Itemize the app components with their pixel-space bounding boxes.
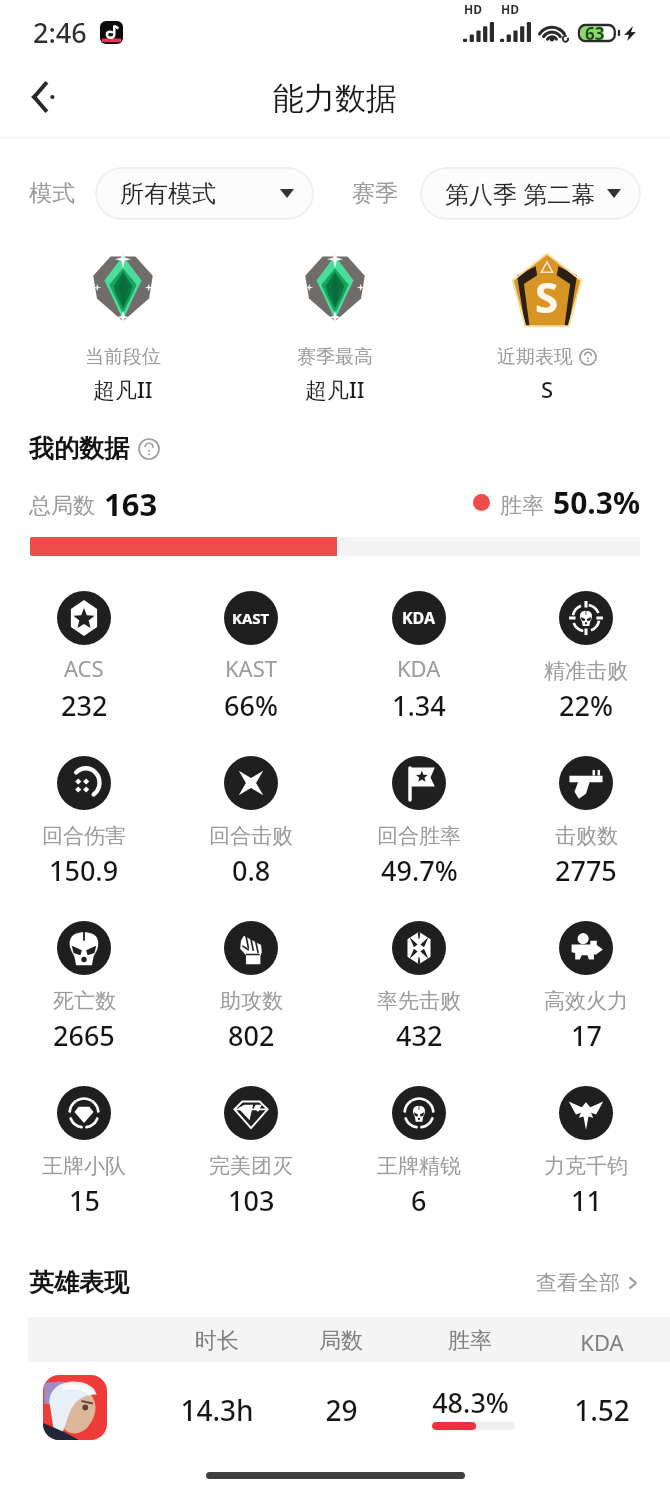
staticText: 63 [585,22,605,45]
staticText: 2775 [555,852,617,889]
staticText: S [541,374,554,404]
staticText: 完美团灭 [209,1153,293,1179]
staticText: 50.3% [553,482,640,523]
button[interactable]: 助攻数 [168,921,334,1046]
staticText: 高效火力 [544,988,628,1014]
staticText: 超凡II [305,374,365,404]
staticText: 49.7% [381,852,458,889]
staticText: 0.8 [232,852,271,889]
button[interactable]: 回合胜率 [336,756,502,881]
button[interactable]: KDA [336,591,502,716]
staticText: 近期表现 [497,345,573,369]
staticText: 66% [224,687,278,724]
button[interactable]: 14.3h [0,1366,670,1452]
staticText: 1.34 [392,687,446,724]
staticText: 力克千钧 [544,1153,628,1179]
staticText: 英雄表现 [29,1267,129,1298]
staticText: ACS [64,653,104,683]
staticText: 总局数 [29,492,95,520]
staticText: KDA [402,607,436,629]
staticText: 22% [559,687,613,724]
staticText: KDA [397,653,441,683]
staticText: 胜率 [448,1327,492,1355]
staticText: KAST [225,653,277,683]
staticText: 赛季 [352,179,398,208]
staticText: 第八季 第二幕 [445,177,596,210]
button[interactable]: KAST [168,591,334,716]
staticText: 死亡数 [53,988,116,1014]
staticText: 精准击败 [544,658,628,684]
button[interactable]: 击败数 [503,756,669,881]
staticText: 王牌精锐 [377,1153,461,1179]
button[interactable]: 高效火力 [503,921,669,1046]
staticText: 802 [228,1017,275,1054]
button[interactable]: 回合击败 [168,756,334,881]
button[interactable]: Back [15,71,67,123]
staticText: 2:46 [33,14,87,51]
button[interactable]: 赛季最高 [225,253,445,403]
staticText: 查看全部 [536,1270,620,1296]
staticText: 232 [61,687,108,724]
staticText: 胜率 [500,492,544,520]
staticText: HD [501,1,519,17]
button[interactable]: 回合伤害 [1,756,167,881]
staticText: 局数 [319,1327,363,1355]
staticText: 29 [325,1391,358,1429]
staticText: KAST [232,608,270,628]
staticText: 时长 [195,1327,239,1355]
button[interactable]: S [437,253,657,403]
staticText: 11 [571,1182,602,1219]
staticText: 助攻数 [220,988,283,1014]
staticText: 当前段位 [85,345,161,369]
staticText: 能力数据 [273,79,397,118]
staticText: 回合伤害 [42,823,126,849]
staticText: 432 [396,1017,443,1054]
button[interactable]: ACS [1,591,167,716]
staticText: 回合胜率 [377,823,461,849]
staticText: 率先击败 [377,988,461,1014]
staticText: 6 [411,1182,427,1219]
staticText: S [535,268,559,325]
button[interactable]: 精准击败 [503,591,669,716]
staticText: 14.3h [180,1391,254,1429]
button[interactable]: 死亡数 [1,921,167,1046]
staticText: 所有模式 [120,179,216,209]
staticText: 模式 [29,179,75,208]
staticText: 王牌小队 [42,1153,126,1179]
button[interactable]: 当前段位 [13,253,233,403]
staticText: 1.52 [574,1391,630,1429]
staticText: 17 [571,1017,602,1054]
staticText: 103 [228,1182,275,1219]
button[interactable]: 力克千钧 [503,1086,669,1211]
button[interactable]: 所有模式 [95,167,314,220]
staticText: 超凡II [93,374,153,404]
staticText: 击败数 [555,823,618,849]
button[interactable]: 第八季 第二幕 [420,167,641,220]
staticText: HD [464,1,482,17]
button[interactable]: 王牌精锐 [336,1086,502,1211]
staticText: 150.9 [49,852,119,889]
button[interactable]: 王牌小队 [1,1086,167,1211]
staticText: 48.3% [432,1384,509,1421]
button[interactable]: 率先击败 [336,921,502,1046]
staticText: 163 [104,483,158,525]
button[interactable]: 查看全部 [536,1270,641,1296]
button[interactable]: 完美团灭 [168,1086,334,1211]
staticText: 我的数据 [29,433,129,464]
staticText: KDA [580,1327,624,1357]
staticText: 回合击败 [209,823,293,849]
staticText: 赛季最高 [297,345,373,369]
staticText: 15 [69,1182,100,1219]
staticText: 2665 [53,1017,115,1054]
